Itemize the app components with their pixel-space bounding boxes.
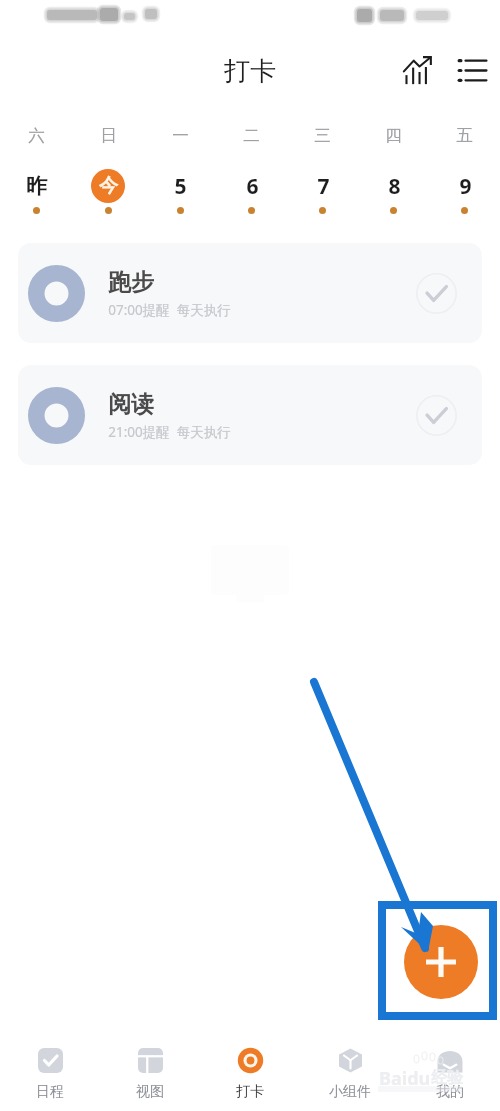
staticText: Baidu xyxy=(379,1066,431,1091)
staticText: 跑步 xyxy=(108,268,154,297)
button[interactable]: 8 xyxy=(358,168,429,230)
staticText: 四 xyxy=(385,125,402,146)
staticText: 打卡 xyxy=(224,55,276,88)
button[interactable]: Add habit xyxy=(404,925,478,999)
staticText: 8 xyxy=(388,172,401,201)
staticText: 7 xyxy=(317,172,330,201)
staticText: 21:00提醒 每天执行 xyxy=(108,423,231,441)
staticText: 今 xyxy=(99,174,118,198)
button[interactable]: 5 xyxy=(144,168,216,230)
button[interactable]: 阅读 xyxy=(18,365,482,465)
button[interactable]: 打卡 xyxy=(200,1035,300,1111)
staticText: 9 xyxy=(459,172,472,201)
button[interactable]: 我的 xyxy=(400,1035,500,1111)
button[interactable]: 日程 xyxy=(0,1035,100,1111)
staticText: 我的 xyxy=(436,1083,464,1101)
staticText: 日 xyxy=(100,125,117,146)
button[interactable]: 跑步 xyxy=(18,243,482,343)
staticText: 三 xyxy=(314,125,331,146)
staticText: 六 xyxy=(28,125,45,146)
staticText: 一 xyxy=(172,125,189,146)
staticText: 阅读 xyxy=(108,390,154,419)
staticText: 打卡 xyxy=(236,1083,264,1101)
staticText: 07:00提醒 每天执行 xyxy=(108,301,231,319)
button[interactable]: Statistics xyxy=(394,47,440,93)
staticText: 日程 xyxy=(36,1083,64,1101)
staticText: 6 xyxy=(246,172,259,201)
staticText: 视图 xyxy=(136,1083,164,1101)
button[interactable]: List xyxy=(449,47,495,93)
staticText: 昨 xyxy=(26,173,47,199)
button[interactable]: 6 xyxy=(216,168,287,230)
staticText: 5 xyxy=(174,172,187,201)
staticText: 五 xyxy=(456,125,473,146)
button[interactable]: 9 xyxy=(429,168,500,230)
staticText: 二 xyxy=(243,125,260,146)
button[interactable]: 视图 xyxy=(100,1035,200,1111)
staticText: 小组件 xyxy=(329,1083,371,1101)
button[interactable]: 今 xyxy=(72,168,144,230)
staticText: 经验 xyxy=(431,1068,463,1088)
button[interactable]: 小组件 xyxy=(300,1035,400,1111)
button[interactable]: 7 xyxy=(287,168,358,230)
button[interactable]: 昨 xyxy=(0,168,72,230)
